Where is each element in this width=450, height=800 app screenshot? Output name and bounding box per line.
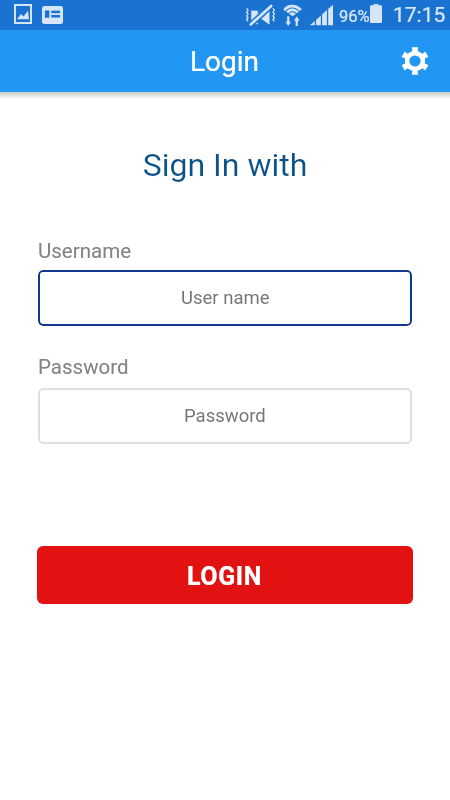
staticText: 96% xyxy=(339,7,370,26)
staticText: Password xyxy=(184,405,266,427)
button[interactable]: Password xyxy=(38,388,412,444)
staticText: Username xyxy=(38,239,132,263)
button[interactable]: Settings xyxy=(391,37,439,85)
button[interactable]: LOGIN xyxy=(37,546,413,604)
staticText: User name xyxy=(181,287,270,309)
staticText: Login xyxy=(190,45,260,78)
staticText: LOGIN xyxy=(187,562,263,591)
staticText: Sign In with xyxy=(0,146,450,184)
staticText: 17:15 xyxy=(393,3,446,28)
button[interactable]: User name xyxy=(38,270,412,326)
staticText: Password xyxy=(38,355,129,379)
